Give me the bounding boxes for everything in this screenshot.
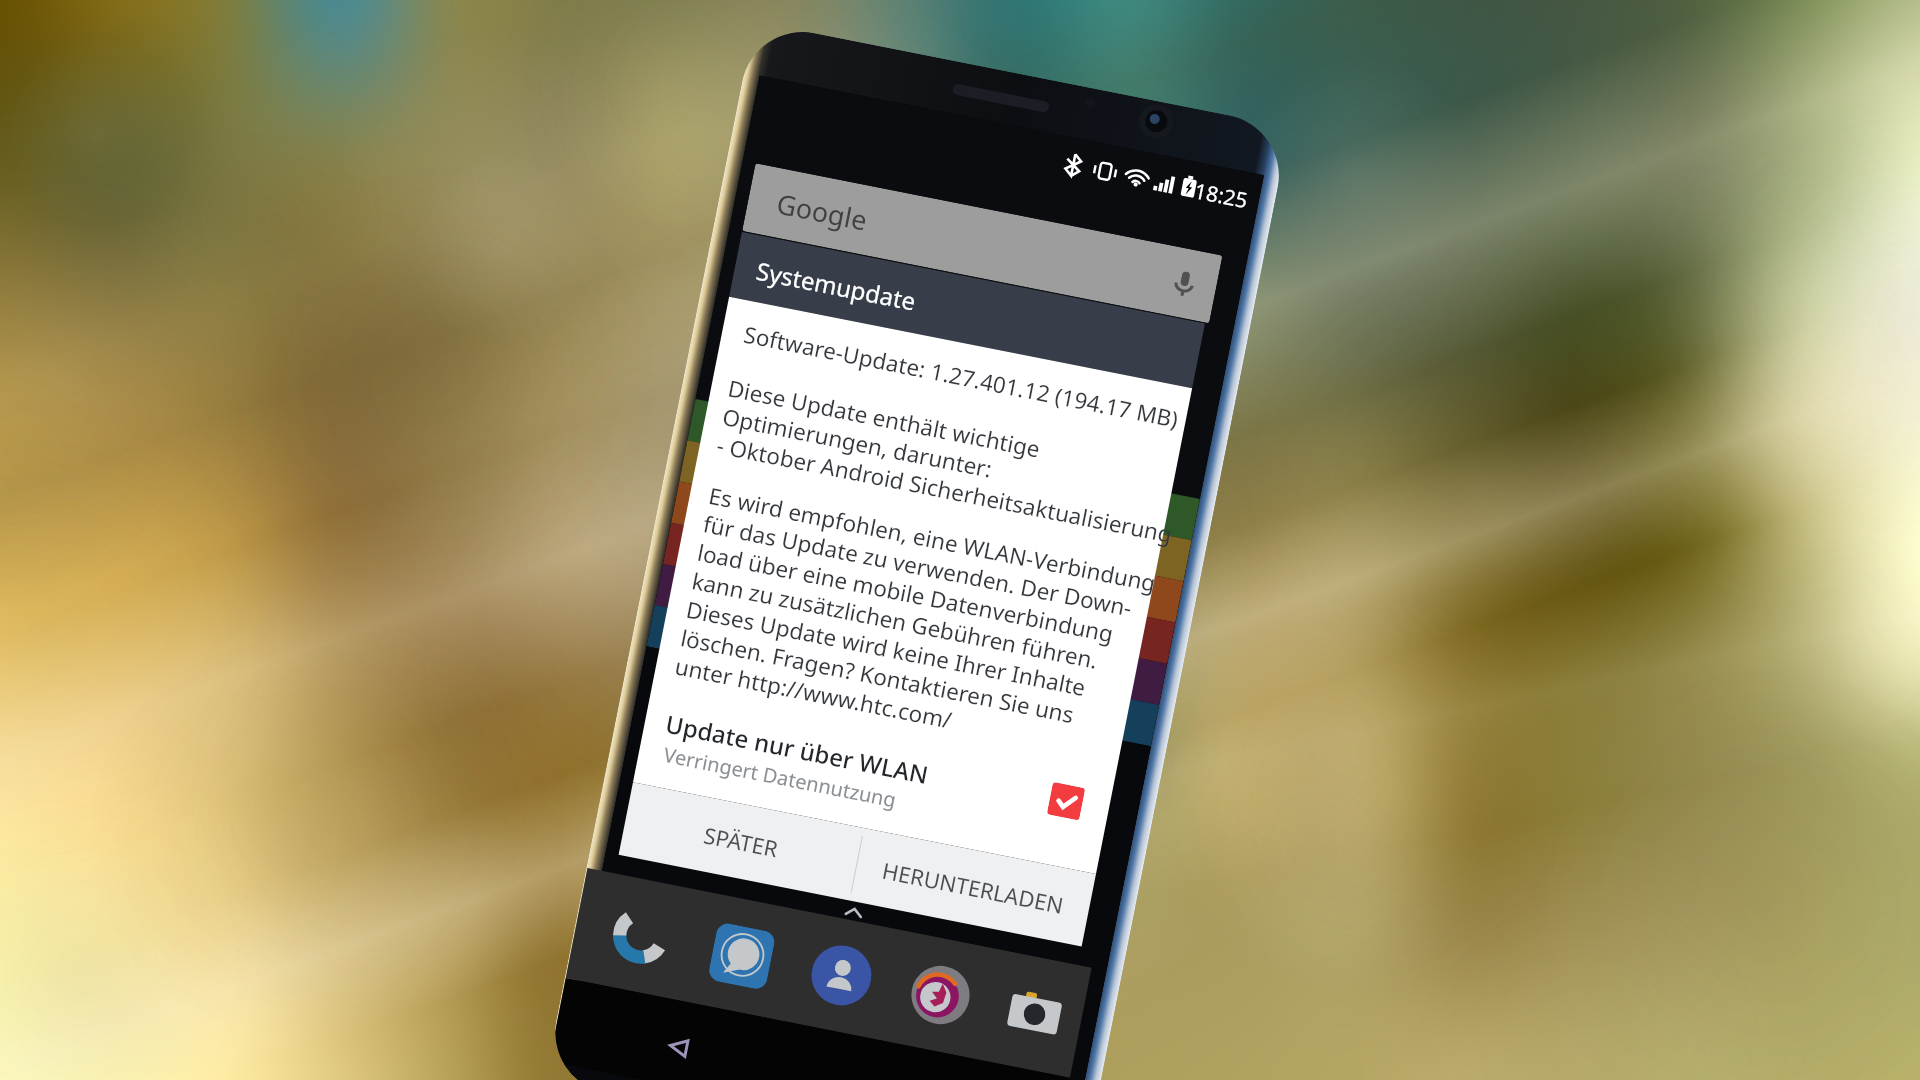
staticText: Software-Update: 1.27.401.12 (194.17 MB) [741, 319, 1182, 435]
staticText: HERUNTERLADEN [880, 855, 1066, 920]
button[interactable]: Camera [985, 951, 1085, 1076]
button[interactable]: HERUNTERLADEN [850, 828, 1096, 946]
staticText: SPÄTER [701, 819, 781, 863]
button[interactable]: Messages [691, 893, 791, 1018]
staticText: Verringert Datennutzung [661, 741, 899, 813]
button[interactable]: Google [742, 163, 1222, 323]
button[interactable]: Back [657, 1026, 699, 1068]
staticText: Diese Update enthält wichtige Optimierun… [714, 372, 1187, 549]
staticText: Google [774, 185, 871, 239]
other: Voice search [1163, 263, 1205, 305]
button[interactable]: SPÄTER [619, 782, 863, 900]
button[interactable]: Update only over Wi-Fi [1047, 782, 1085, 821]
button[interactable]: Firefox [890, 932, 991, 1058]
staticText: Systemupdate [754, 254, 919, 318]
staticText: Es wird empfohlen, eine WLAN-Verbindung … [673, 480, 1159, 768]
staticText: 18:25 [1192, 176, 1250, 215]
staticText: Update nur über WLAN [663, 707, 931, 791]
button[interactable]: Contacts [791, 913, 891, 1038]
button[interactable]: Phone [592, 873, 692, 999]
